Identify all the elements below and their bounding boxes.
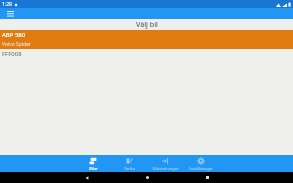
button[interactable]: ABP 580	[0, 30, 293, 49]
button[interactable]: Utbetalningar	[147, 155, 183, 172]
button[interactable]: Bilar	[75, 155, 111, 172]
button[interactable]: Open navigation menu	[4, 8, 16, 19]
staticText: Välj bil	[136, 20, 158, 30]
staticText: Tanka	[124, 166, 135, 171]
staticText: Bilar	[89, 166, 98, 171]
staticText: Inställningar	[189, 166, 213, 171]
staticText: FFF008	[2, 50, 22, 58]
button[interactable]: Back	[57, 172, 117, 183]
staticText: 1:29	[2, 1, 12, 8]
button[interactable]: Recent apps	[177, 172, 237, 183]
button[interactable]: FFF008	[0, 49, 293, 59]
button[interactable]: Inställningar	[183, 155, 219, 172]
button[interactable]: Home	[117, 172, 177, 183]
staticText: ABP 580	[2, 31, 26, 39]
staticText: Volvo Spider	[2, 41, 32, 48]
staticText: Utbetalningar	[152, 166, 179, 171]
button[interactable]: Tanka	[111, 155, 147, 172]
